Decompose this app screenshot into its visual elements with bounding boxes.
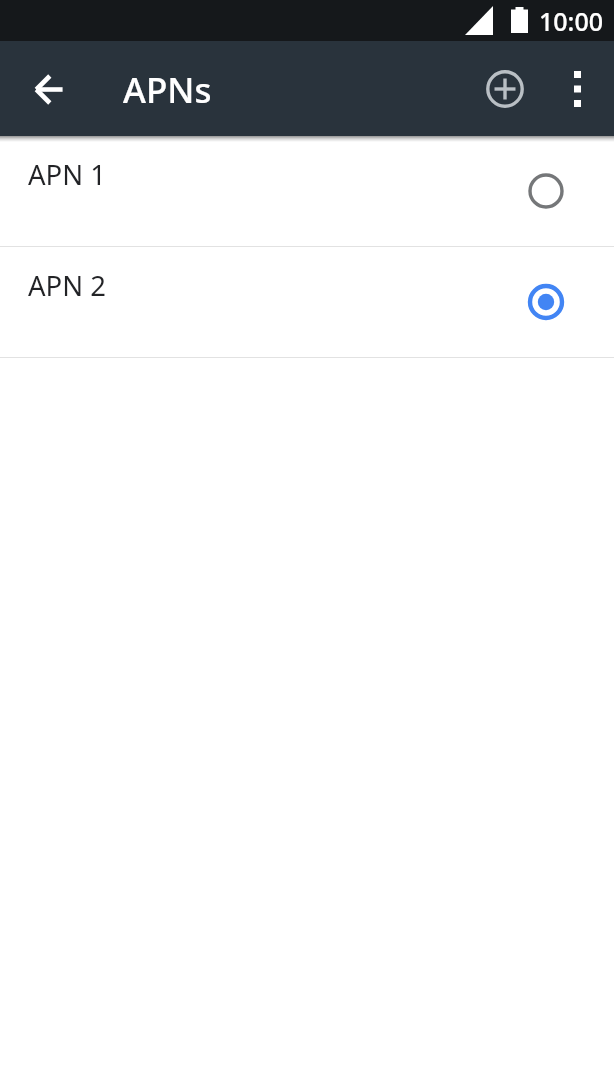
staticText: APN 1 xyxy=(28,156,106,193)
staticText: 10:00 xyxy=(539,4,604,38)
staticText: APNs xyxy=(123,66,212,114)
button[interactable]: APN 1 xyxy=(0,136,614,246)
button[interactable]: Add APN xyxy=(477,61,533,117)
button[interactable]: Select APN 1 xyxy=(528,173,564,209)
button[interactable]: APN 2 selected xyxy=(528,284,564,320)
staticText: APN 2 xyxy=(28,267,106,304)
button[interactable]: Navigate up xyxy=(20,61,76,117)
button[interactable]: APN 2 xyxy=(0,247,614,357)
button[interactable]: More options xyxy=(549,61,605,117)
